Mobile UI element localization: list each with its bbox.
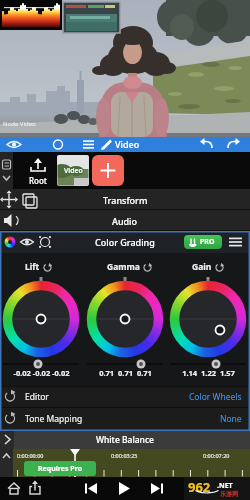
button[interactable]: White Balance — [0, 430, 250, 449]
button[interactable] — [4, 477, 28, 500]
staticText: Requires Pro — [38, 464, 83, 474]
button[interactable] — [46, 137, 70, 152]
button[interactable] — [0, 137, 30, 152]
staticText: -0.02 -0.02 -0.02 — [0, 368, 83, 378]
staticText: Video — [115, 138, 140, 150]
staticText: Editor — [25, 391, 49, 403]
staticText: White Balance — [96, 434, 154, 446]
staticText: Lift — [25, 261, 40, 273]
button[interactable]: Tone Mapping — [0, 407, 250, 430]
staticText: Node Video — [3, 120, 36, 128]
staticText: None — [220, 413, 242, 425]
button[interactable] — [80, 477, 104, 500]
staticText: .NET — [217, 481, 233, 491]
staticText: Gain — [192, 261, 212, 273]
staticText: Video — [64, 166, 83, 176]
button[interactable] — [0, 449, 13, 477]
button[interactable]: Video — [98, 137, 148, 152]
staticText: 962 — [188, 478, 211, 496]
staticText: 0.71 0.71 0.71 — [84, 368, 167, 378]
staticText: 乐游网 — [220, 490, 238, 498]
button[interactable]: Requires Pro — [24, 461, 96, 476]
staticText: Transform — [103, 194, 148, 206]
button[interactable]: Editor — [0, 386, 250, 407]
button[interactable]: Gamma — [107, 261, 152, 273]
staticText: Color Grading — [95, 236, 155, 248]
staticText: 0:00:07:20 — [203, 452, 230, 459]
button[interactable]: Gain — [192, 261, 224, 273]
button[interactable] — [0, 152, 13, 189]
staticText: Color Wheels — [189, 391, 242, 403]
button[interactable]: Audio — [0, 210, 250, 231]
button[interactable] — [146, 477, 168, 500]
staticText: Audio — [112, 215, 138, 227]
staticText: Root — [29, 175, 47, 186]
staticText: 0:00:03:25 — [111, 452, 138, 459]
staticText: 1.14 1.22 1.57 — [167, 368, 250, 378]
button[interactable] — [92, 155, 124, 186]
button[interactable] — [76, 137, 100, 152]
button[interactable]: Video — [57, 155, 89, 186]
button[interactable]: Lift — [25, 261, 52, 273]
button[interactable] — [196, 137, 220, 152]
staticText: 0:00:00:00 — [17, 452, 44, 459]
button[interactable]: PRO — [184, 235, 222, 249]
staticText: Gamma — [107, 261, 140, 273]
staticText: PRO — [200, 237, 215, 247]
button[interactable] — [28, 477, 48, 500]
button[interactable]: Transform — [0, 189, 250, 210]
staticText: Tone Mapping — [25, 413, 83, 425]
button[interactable] — [222, 137, 246, 152]
button[interactable]: Root — [22, 154, 54, 187]
button[interactable]: Color Grading — [0, 231, 250, 253]
button[interactable] — [112, 477, 136, 500]
